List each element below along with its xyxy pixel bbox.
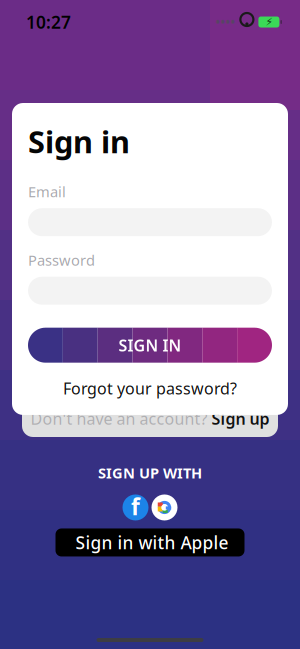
button[interactable]: SIGN IN xyxy=(28,328,272,363)
button[interactable] xyxy=(55,528,244,556)
button[interactable]: Sign up with Facebook xyxy=(122,494,148,520)
button[interactable]: Don't have an account? xyxy=(22,400,278,437)
staticText: Forgot your password? xyxy=(63,378,237,399)
button[interactable]: Sign up with Google xyxy=(151,494,177,520)
staticText: Email xyxy=(28,182,66,201)
staticText: Sign up xyxy=(211,408,269,429)
staticText: Password xyxy=(28,250,95,270)
staticText: SIGN UP WITH xyxy=(98,463,202,482)
staticText: ⚡︎ xyxy=(265,16,272,28)
staticText: •••• xyxy=(215,14,235,30)
staticText: Sign in with Apple xyxy=(75,531,228,554)
staticText: Don't have an account? xyxy=(30,408,211,429)
staticText: 10:27 xyxy=(26,10,71,33)
staticText: SIGN IN xyxy=(118,335,181,356)
staticText: f xyxy=(131,491,140,521)
button[interactable]: Forgot your password? xyxy=(28,363,272,415)
staticText: Sign in xyxy=(28,121,130,162)
